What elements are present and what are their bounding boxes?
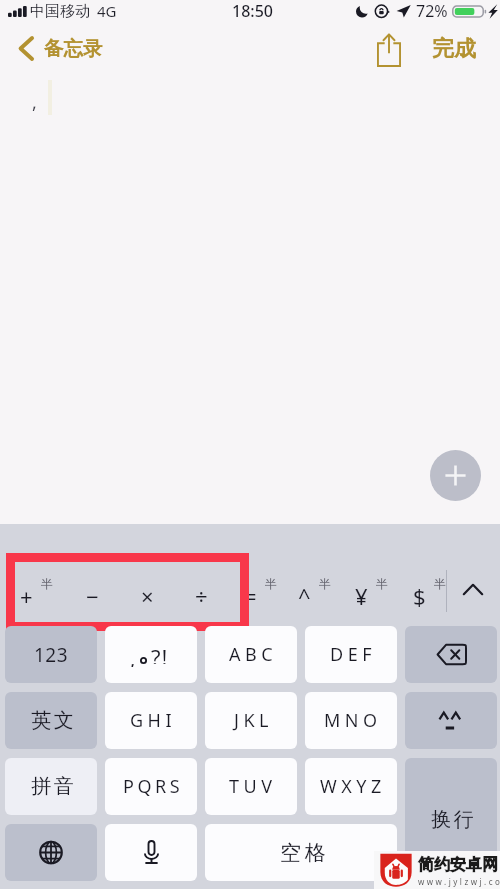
button[interactable]: Emoji: [405, 692, 497, 749]
staticText: GHI: [130, 708, 177, 733]
staticText: 半: [376, 576, 388, 590]
staticText: 123: [34, 642, 69, 668]
staticText: ,: [32, 90, 37, 115]
staticText: 备忘录: [44, 36, 103, 61]
staticText: 中国移动: [30, 2, 90, 21]
button[interactable]: ×: [121, 572, 173, 620]
staticText: =: [244, 581, 257, 611]
button[interactable]: 完成: [424, 30, 484, 68]
staticText: 4G: [97, 1, 117, 21]
button[interactable]: +: [0, 572, 52, 620]
button[interactable]: 换行: [405, 758, 497, 881]
button[interactable]: Share: [369, 29, 409, 71]
staticText: ?!: [151, 642, 169, 664]
staticText: ÷: [195, 581, 208, 611]
button[interactable]: GHI: [105, 692, 197, 749]
staticText: 半: [319, 576, 331, 590]
staticText: ,: [130, 645, 136, 667]
staticText: +: [20, 581, 33, 611]
button[interactable]: 备忘录: [6, 32, 117, 65]
staticText: 半: [434, 576, 446, 590]
staticText: ^: [298, 581, 311, 611]
button[interactable]: MNO: [305, 692, 397, 749]
staticText: −: [86, 581, 99, 611]
button[interactable]: TUV: [205, 758, 297, 815]
staticText: MNO: [324, 708, 382, 733]
button[interactable]: ¥: [335, 572, 387, 620]
button[interactable]: −: [66, 572, 118, 620]
button[interactable]: Voice input: [105, 824, 197, 881]
button[interactable]: Delete: [405, 626, 497, 683]
staticText: DEF: [330, 642, 376, 667]
staticText: WXYZ: [320, 774, 386, 799]
staticText: ×: [141, 581, 154, 611]
button[interactable]: DEF: [305, 626, 397, 683]
button[interactable]: Collapse keyboard: [452, 565, 494, 613]
staticText: 半: [265, 576, 277, 590]
staticText: 简约安卓网: [418, 855, 498, 875]
button[interactable]: PQRS: [105, 758, 197, 815]
staticText: www.jylzwj.com: [418, 876, 500, 887]
button[interactable]: 123: [5, 626, 97, 683]
button[interactable]: $: [393, 572, 445, 620]
staticText: 英文: [30, 708, 75, 733]
button[interactable]: =: [224, 572, 276, 620]
button[interactable]: JKL: [205, 692, 297, 749]
button[interactable]: Punctuation: [105, 626, 197, 683]
button[interactable]: 拼音: [5, 758, 97, 815]
staticText: ¥: [355, 581, 368, 611]
staticText: 18:50: [232, 0, 273, 22]
staticText: 空格: [278, 840, 328, 866]
button[interactable]: ABC: [205, 626, 297, 683]
staticText: PQRS: [123, 774, 184, 799]
button[interactable]: ÷: [175, 572, 227, 620]
staticText: 72%: [416, 0, 448, 22]
staticText: $: [413, 581, 426, 611]
button[interactable]: Switch keyboard: [5, 824, 97, 881]
staticText: ABC: [229, 642, 278, 667]
button[interactable]: 空格: [205, 824, 397, 881]
staticText: JKL: [234, 708, 273, 733]
button[interactable]: 英文: [5, 692, 97, 749]
staticText: 拼音: [30, 774, 75, 799]
button[interactable]: Add: [430, 450, 481, 501]
staticText: TUV: [229, 774, 277, 799]
staticText: 完成: [432, 35, 476, 63]
staticText: 半: [41, 576, 53, 590]
staticText: 换行: [430, 807, 475, 832]
button[interactable]: ^: [278, 572, 330, 620]
button[interactable]: WXYZ: [305, 758, 397, 815]
